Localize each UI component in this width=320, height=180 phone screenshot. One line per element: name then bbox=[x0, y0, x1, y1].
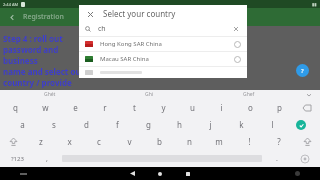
button[interactable]: Close bbox=[84, 8, 96, 20]
staticText: p bbox=[277, 102, 282, 113]
button[interactable]: Shift bbox=[0, 133, 26, 150]
button[interactable]: z bbox=[26, 133, 55, 150]
staticText: u bbox=[190, 102, 195, 113]
button[interactable]: r bbox=[90, 99, 120, 116]
button[interactable]: g bbox=[133, 116, 164, 133]
button[interactable]: k bbox=[226, 116, 257, 133]
button[interactable]: o bbox=[236, 99, 265, 116]
staticText: g bbox=[146, 119, 151, 130]
button[interactable]: Shift bbox=[294, 133, 320, 150]
button[interactable]: e bbox=[60, 99, 90, 116]
button[interactable]: Enter bbox=[288, 116, 314, 133]
button[interactable]: Backspace bbox=[294, 99, 320, 116]
staticText: b bbox=[157, 136, 162, 147]
staticText: ? bbox=[277, 136, 281, 147]
button[interactable]: x bbox=[55, 133, 84, 150]
staticText: c bbox=[97, 136, 101, 147]
button[interactable]: t bbox=[120, 99, 149, 116]
button[interactable]: j bbox=[195, 116, 226, 133]
staticText: f bbox=[116, 119, 119, 130]
button[interactable]: Keyboard settings bbox=[290, 150, 320, 167]
staticText: v bbox=[127, 136, 132, 147]
staticText: . bbox=[276, 154, 278, 164]
staticText: w bbox=[42, 102, 49, 113]
button[interactable]: q bbox=[0, 99, 30, 116]
button[interactable]: Hong Kong SAR China bbox=[85, 37, 241, 51]
button[interactable]: Recents bbox=[178, 167, 198, 180]
button[interactable]: Back bbox=[122, 167, 142, 180]
button[interactable]: u bbox=[178, 99, 207, 116]
button[interactable]: f bbox=[102, 116, 133, 133]
staticText: Macau SAR China bbox=[100, 55, 149, 63]
staticText: Ghét bbox=[44, 91, 56, 98]
button[interactable]: Macau SAR China bbox=[85, 52, 241, 66]
staticText: ! bbox=[248, 136, 251, 147]
button[interactable]: Expand suggestions bbox=[298, 90, 320, 99]
staticText: ?123 bbox=[11, 155, 24, 163]
button[interactable]: v bbox=[114, 133, 144, 150]
button[interactable]: a bbox=[6, 116, 38, 133]
button[interactable]: Ghi bbox=[100, 90, 199, 99]
staticText: Ghef bbox=[243, 91, 255, 98]
button[interactable]: Home bbox=[150, 167, 170, 180]
staticText: l bbox=[271, 119, 274, 130]
staticText: ? bbox=[301, 67, 304, 75]
button[interactable]: y bbox=[149, 99, 178, 116]
button[interactable]: ch bbox=[85, 22, 241, 36]
staticText: password and business bbox=[3, 44, 85, 66]
button[interactable]: Hide keyboard bbox=[0, 167, 46, 180]
staticText: z bbox=[39, 136, 43, 147]
staticText: y bbox=[161, 102, 166, 113]
button[interactable]: w bbox=[30, 99, 60, 116]
staticText: n bbox=[187, 136, 192, 147]
staticText: o bbox=[248, 102, 253, 113]
button[interactable]: Comma bbox=[34, 150, 60, 167]
staticText: m bbox=[215, 136, 223, 147]
button[interactable]: Clear bbox=[231, 24, 241, 34]
staticText: k bbox=[239, 119, 244, 130]
staticText: country / provide bbox=[3, 77, 72, 88]
button[interactable] bbox=[85, 67, 241, 78]
staticText: q bbox=[13, 102, 18, 113]
button[interactable]: c bbox=[84, 133, 114, 150]
button[interactable]: b bbox=[144, 133, 174, 150]
button[interactable]: d bbox=[70, 116, 102, 133]
button[interactable]: m bbox=[204, 133, 234, 150]
staticText: d bbox=[84, 119, 89, 130]
button[interactable]: Switch keyboard bbox=[274, 167, 320, 180]
staticText: ch bbox=[98, 24, 106, 34]
button[interactable]: h bbox=[164, 116, 195, 133]
staticText: , bbox=[46, 154, 48, 164]
staticText: a bbox=[20, 119, 25, 130]
button[interactable]: ?123 bbox=[0, 150, 34, 167]
button[interactable]: Back bbox=[5, 10, 19, 24]
staticText: Step 4 : roll out bbox=[3, 33, 63, 44]
staticText: r bbox=[103, 102, 107, 113]
staticText: name and select our bbox=[3, 66, 85, 77]
button[interactable]: Ghét bbox=[0, 90, 100, 99]
staticText: j bbox=[209, 119, 212, 130]
button[interactable]: n bbox=[174, 133, 204, 150]
button[interactable]: ? bbox=[264, 133, 294, 150]
button[interactable]: l bbox=[257, 116, 288, 133]
button[interactable]: Ghef bbox=[199, 90, 298, 99]
staticText: h bbox=[177, 119, 182, 130]
staticText: Hong Kong SAR China bbox=[100, 40, 162, 48]
staticText: t bbox=[133, 102, 136, 113]
staticText: ▮▮ bbox=[312, 2, 317, 7]
staticText: e bbox=[73, 102, 78, 113]
staticText: Ghi bbox=[145, 91, 154, 98]
button[interactable]: p bbox=[265, 99, 294, 116]
button[interactable]: ! bbox=[234, 133, 264, 150]
staticText: s bbox=[52, 119, 56, 130]
staticText: i bbox=[220, 102, 223, 113]
staticText: Select your country bbox=[103, 8, 176, 19]
button[interactable]: Help bbox=[296, 64, 309, 77]
staticText: x bbox=[67, 136, 72, 147]
staticText: 2:44 AM bbox=[3, 2, 19, 7]
button[interactable]: i bbox=[207, 99, 236, 116]
staticText: Registration bbox=[23, 12, 64, 22]
button[interactable]: s bbox=[38, 116, 70, 133]
